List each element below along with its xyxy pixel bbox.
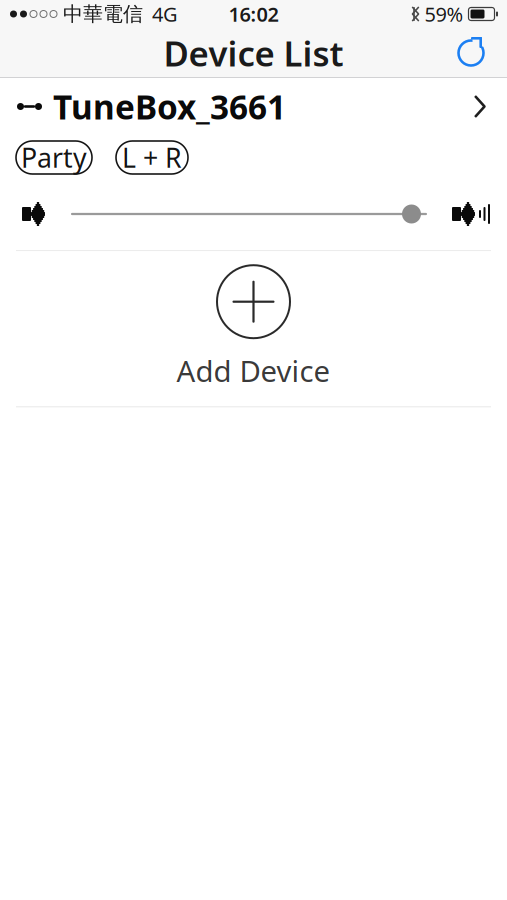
staticText: 中華電信: [63, 2, 143, 26]
button[interactable]: L + R: [116, 141, 188, 174]
staticText: 16:02: [228, 1, 278, 27]
button[interactable]: Party: [16, 141, 92, 174]
staticText: Party: [21, 140, 87, 175]
staticText: 59%: [424, 1, 463, 27]
button[interactable]: Refresh: [448, 30, 494, 76]
staticText: Device List: [163, 30, 343, 76]
staticText: Add Device: [176, 351, 330, 390]
button[interactable]: Add Device: [0, 251, 507, 406]
button[interactable]: TuneBox_3661: [0, 78, 507, 135]
staticText: 4G: [152, 1, 178, 27]
staticText: TuneBox_3661: [53, 84, 286, 129]
staticText: L + R: [122, 140, 182, 175]
